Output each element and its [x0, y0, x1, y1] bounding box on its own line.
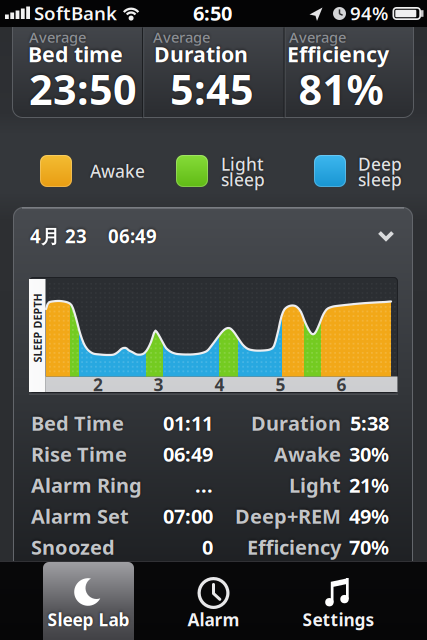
staticText: 94%	[350, 1, 388, 25]
staticText: Bed time	[28, 40, 123, 68]
staticText: 6	[336, 373, 346, 396]
staticText: 4	[214, 373, 224, 396]
staticText: Duration	[154, 40, 248, 68]
staticText: 70%	[349, 534, 389, 560]
button[interactable]: Alarm	[163, 561, 263, 640]
staticText: Sleep Lab	[47, 608, 129, 631]
staticText: ...	[195, 472, 213, 498]
staticText: 23:50	[29, 62, 137, 116]
staticText: Alarm	[187, 608, 239, 631]
staticText: Snoozed	[31, 534, 115, 560]
staticText: Awake	[274, 441, 341, 467]
button[interactable]: 4月 23	[13, 207, 413, 255]
staticText: Alarm Set	[31, 503, 129, 529]
staticText: Deep	[358, 152, 402, 175]
staticText: Bed Time	[31, 410, 124, 436]
staticText: 4月 23	[30, 224, 87, 248]
staticText: 2	[93, 373, 103, 396]
staticText: 06:49	[108, 224, 157, 248]
button[interactable]: Settings	[288, 561, 388, 640]
staticText: 30%	[349, 441, 389, 467]
staticText: Light	[221, 152, 264, 175]
staticText: SoftBank	[34, 1, 117, 25]
staticText: Average	[29, 27, 86, 47]
staticText: 6:50	[193, 0, 232, 26]
staticText: Light	[289, 472, 341, 498]
button[interactable]: Sleep Lab	[43, 562, 134, 640]
staticText: Settings	[302, 608, 374, 631]
staticText: Deep+REM	[235, 503, 341, 529]
staticText: 21%	[349, 472, 389, 498]
staticText: Awake	[90, 159, 145, 182]
staticText: Efficiency	[287, 40, 389, 68]
staticText: Average	[289, 27, 346, 47]
staticText: Efficiency	[247, 534, 341, 560]
staticText: sleep	[221, 168, 265, 191]
staticText: sleep	[358, 168, 402, 191]
staticText: 49%	[349, 503, 389, 529]
staticText: 01:11	[163, 410, 213, 436]
staticText: 5:45	[170, 62, 254, 116]
staticText: Alarm Ring	[31, 472, 142, 498]
staticText: 3	[153, 373, 163, 396]
staticText: Average	[153, 27, 210, 47]
staticText: 5	[275, 373, 285, 396]
staticText: 06:49	[163, 441, 213, 467]
staticText: 0	[202, 534, 213, 560]
staticText: Rise Time	[31, 441, 127, 467]
staticText: SLEEP DEPTH	[3, 321, 72, 335]
staticText: 81%	[298, 62, 383, 116]
staticText: 07:00	[163, 503, 213, 529]
staticText: Duration	[251, 410, 341, 436]
staticText: 5:38	[350, 410, 389, 436]
